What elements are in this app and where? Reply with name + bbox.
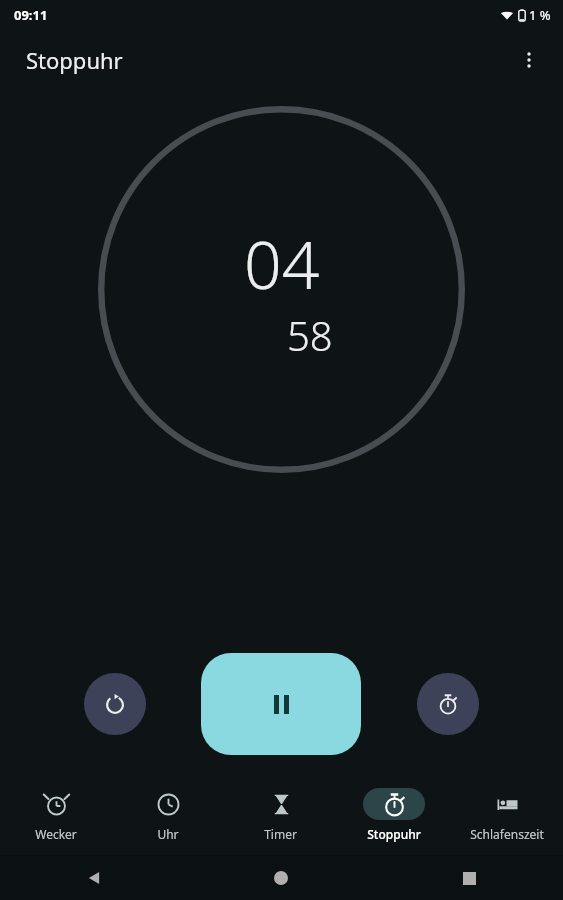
staticText: Uhr — [157, 826, 179, 842]
staticText: Stoppuhr — [367, 826, 421, 842]
staticText: Stoppuhr — [26, 45, 123, 75]
staticText: 58 — [287, 308, 333, 362]
staticText: 09:11 — [14, 6, 48, 24]
button[interactable]: Zurücksetzen — [84, 673, 146, 735]
staticText: 1 % — [529, 6, 551, 24]
button[interactable]: Stoppuhr — [337, 777, 450, 855]
button[interactable]: Zurück — [77, 861, 111, 895]
button[interactable]: Timer — [224, 777, 337, 855]
staticText: 04 — [244, 218, 320, 308]
staticText: Timer — [264, 826, 297, 842]
button[interactable]: Weitere Optionen — [505, 36, 553, 84]
button[interactable]: Startbildschirm — [264, 861, 298, 895]
button[interactable]: Pause — [201, 653, 361, 755]
button[interactable]: Uhr — [112, 777, 224, 855]
button[interactable]: Runde — [417, 673, 479, 735]
button[interactable]: Schlafenszeit — [450, 777, 563, 855]
staticText: Wecker — [35, 826, 77, 842]
button[interactable]: Wecker — [0, 777, 112, 855]
staticText: Schlafenszeit — [470, 826, 544, 842]
button[interactable]: Übersicht — [452, 861, 486, 895]
